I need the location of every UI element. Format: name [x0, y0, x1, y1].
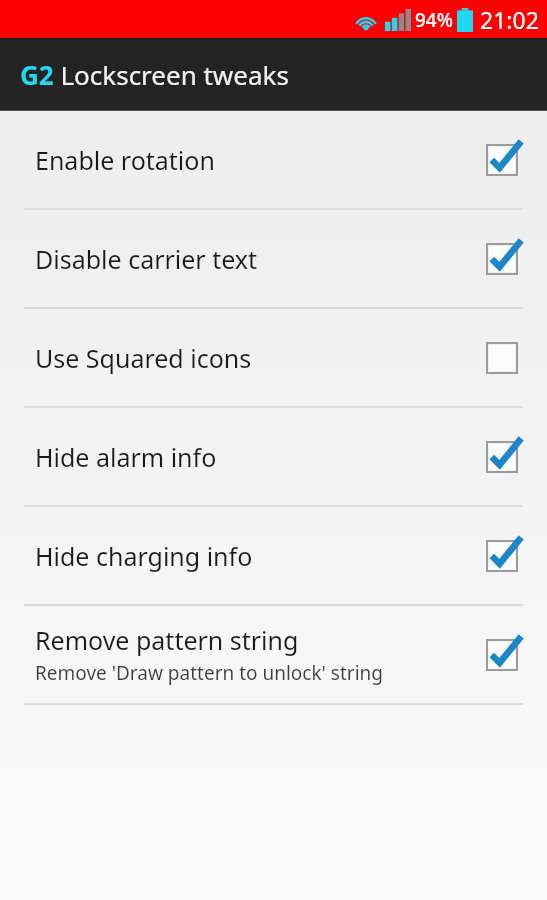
staticText: Remove pattern string: [35, 623, 299, 657]
staticText: G2 Lockscreen tweaks: [20, 57, 289, 92]
staticText: Disable carrier text: [35, 242, 258, 276]
button[interactable]: Checked: [481, 238, 523, 280]
button[interactable]: Hide charging info: [0, 507, 547, 604]
staticText: Use Squared icons: [35, 341, 252, 375]
button[interactable]: Checked: [481, 535, 523, 577]
button[interactable]: Disable carrier text: [0, 210, 547, 307]
staticText: 21:02: [480, 4, 539, 35]
button[interactable]: Checked: [481, 634, 523, 676]
staticText: Hide alarm info: [35, 440, 217, 474]
staticText: Hide charging info: [35, 539, 253, 573]
button[interactable]: Use Squared icons: [0, 309, 547, 406]
button[interactable]: Remove pattern string: [0, 606, 547, 703]
button[interactable]: Checked: [481, 139, 523, 181]
button[interactable]: Unchecked: [481, 337, 523, 379]
staticText: Enable rotation: [35, 143, 215, 177]
staticText: Remove 'Draw pattern to unlock' string: [35, 660, 383, 686]
button[interactable]: Enable rotation: [0, 111, 547, 208]
staticText: 94%: [415, 7, 453, 33]
button[interactable]: Checked: [481, 436, 523, 478]
button[interactable]: Hide alarm info: [0, 408, 547, 505]
